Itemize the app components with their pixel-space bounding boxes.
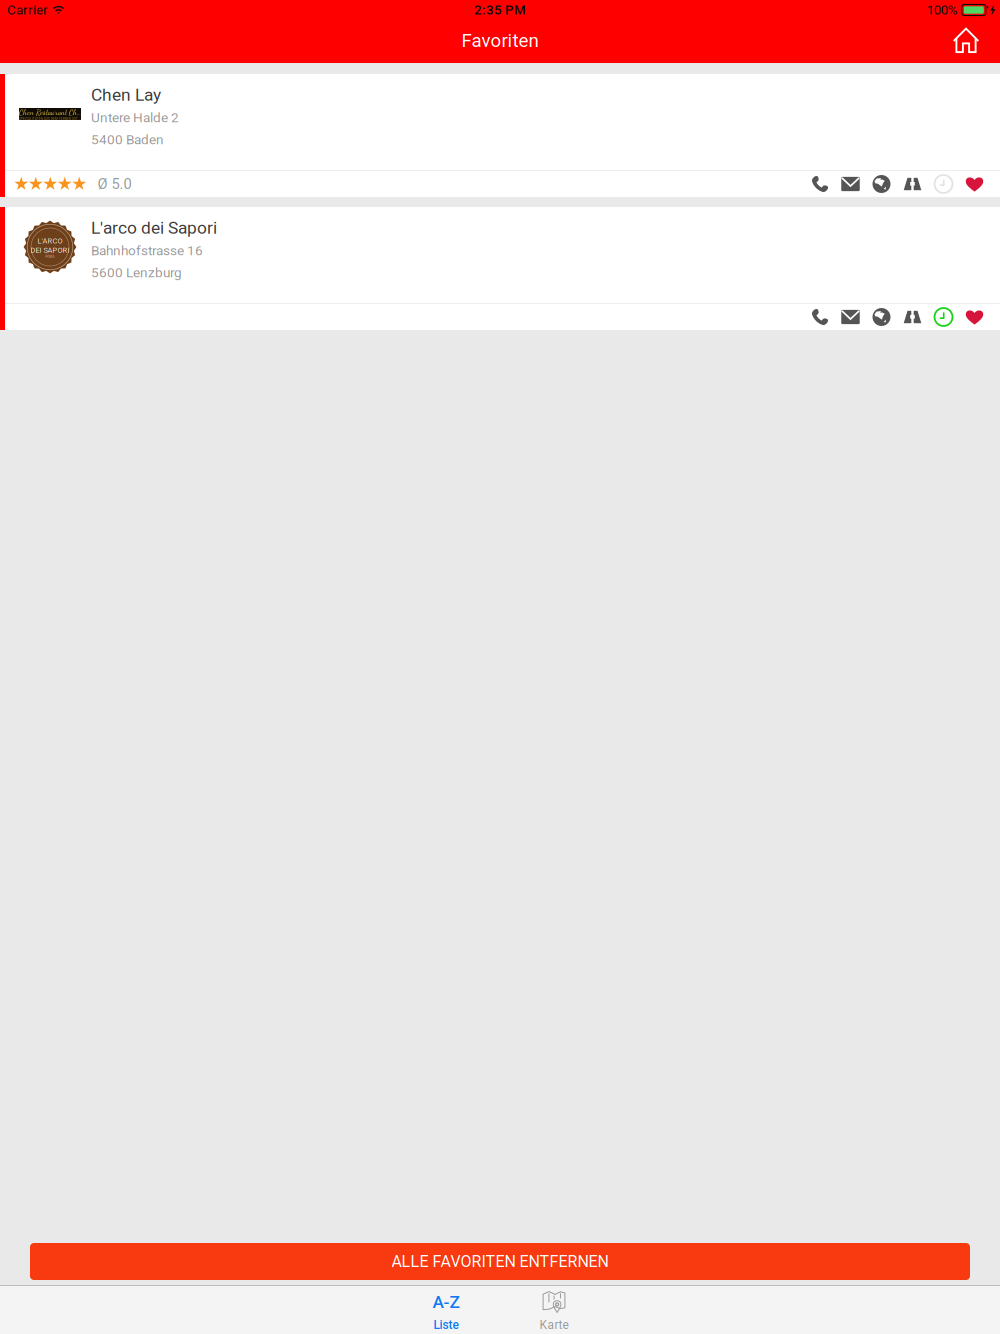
- staticText: Liste: [433, 1318, 458, 1332]
- button[interactable]: Route anzeigen: [897, 170, 928, 197]
- staticText: Karte: [539, 1318, 568, 1332]
- staticText: Carrier: [7, 2, 48, 18]
- button[interactable]: Route anzeigen: [897, 303, 928, 330]
- button[interactable]: Webseite öffnen: [866, 170, 897, 197]
- staticText: 100%: [927, 2, 958, 18]
- staticText: Bahnhofstrasse 16: [91, 242, 203, 258]
- button[interactable]: Aus Favoriten entfernen: [959, 303, 990, 330]
- button[interactable]: Aus Favoriten entfernen: [959, 170, 990, 197]
- button[interactable]: A-Z: [392, 1286, 500, 1334]
- button[interactable]: ALLE FAVORITEN ENTFERNEN: [30, 1243, 970, 1280]
- button[interactable]: Startseite: [944, 20, 988, 63]
- staticText: L'ARCO: [37, 236, 62, 245]
- staticText: A-Z: [432, 1292, 459, 1312]
- button[interactable]: E-Mail schreiben: [835, 170, 866, 197]
- button[interactable]: Anrufen: [804, 170, 835, 197]
- button[interactable]: Karte: [500, 1286, 608, 1334]
- staticText: Chen Restaurant Chen Lay: [19, 108, 81, 117]
- button[interactable]: Öffnungszeiten: [928, 170, 959, 197]
- staticText: L'arco dei Sapori: [91, 218, 217, 238]
- staticText: SPEZIALITÄTEN AUS DEM FERNEN OSTEN: [19, 117, 81, 121]
- button[interactable]: Anrufen: [804, 303, 835, 330]
- button[interactable]: Öffnungszeiten: [928, 303, 959, 330]
- staticText: Ø 5.0: [97, 175, 131, 193]
- staticText: 5400 Baden: [91, 131, 164, 147]
- button[interactable]: Chen Restaurant Chen Lay: [5, 74, 1000, 170]
- staticText: 5600 Lenzburg: [91, 264, 182, 280]
- staticText: DEI SAPORI: [30, 246, 69, 254]
- staticText: Untere Halde 2: [91, 109, 179, 125]
- staticText: 2:35 PM: [474, 2, 526, 18]
- button[interactable]: Webseite öffnen: [866, 303, 897, 330]
- staticText: Favoriten: [461, 30, 538, 51]
- button[interactable]: L'ARCO: [5, 207, 1000, 303]
- staticText: ALLE FAVORITEN ENTFERNEN: [391, 1252, 608, 1271]
- button[interactable]: E-Mail schreiben: [835, 303, 866, 330]
- staticText: ROMA: [45, 255, 54, 259]
- staticText: Chen Lay: [91, 85, 161, 105]
